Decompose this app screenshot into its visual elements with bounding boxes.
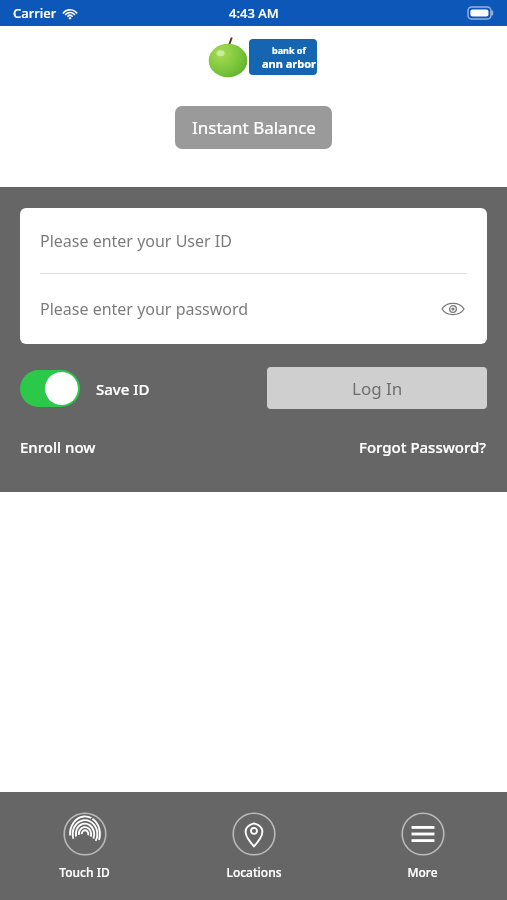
button[interactable]: Enroll now <box>20 437 96 457</box>
staticText: Forgot Password? <box>359 437 487 457</box>
staticText: Locations <box>226 864 282 880</box>
staticText: Please enter your password <box>40 298 249 320</box>
staticText: ann arbor <box>262 56 316 71</box>
button[interactable]: Touch ID <box>0 806 169 886</box>
staticText: 4:43 AM <box>229 4 279 22</box>
staticText: More <box>407 864 438 880</box>
button[interactable]: Please enter your User ID <box>20 208 487 273</box>
button[interactable]: Log In <box>267 367 487 409</box>
button[interactable]: Forgot Password? <box>359 437 487 457</box>
staticText: bank of <box>272 44 306 56</box>
staticText: Instant Balance <box>192 116 316 139</box>
button[interactable]: Instant Balance <box>175 106 332 149</box>
staticText: Please enter your User ID <box>40 230 232 252</box>
button[interactable]: Locations <box>169 806 338 886</box>
button[interactable]: Show password <box>437 293 469 325</box>
button[interactable]: Save ID <box>20 370 150 407</box>
staticText: Save ID <box>96 379 150 399</box>
button[interactable]: More <box>338 806 507 886</box>
staticText: Touch ID <box>59 864 110 880</box>
button[interactable]: Please enter your password <box>20 274 487 344</box>
staticText: Carrier <box>13 4 57 22</box>
staticText: Log In <box>352 377 403 400</box>
staticText: Enroll now <box>20 437 96 457</box>
